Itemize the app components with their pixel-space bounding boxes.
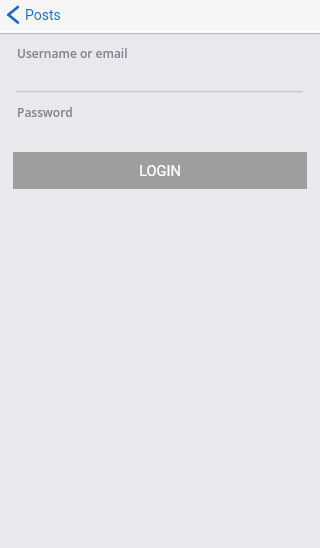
button[interactable]: Password xyxy=(12,99,308,145)
staticText: Password xyxy=(17,104,73,120)
staticText: Username or email xyxy=(17,45,128,61)
staticText: Posts xyxy=(25,7,61,23)
button[interactable]: LOGIN xyxy=(13,152,307,189)
button[interactable]: Back to Posts xyxy=(1,0,71,30)
staticText: LOGIN xyxy=(139,163,181,180)
button[interactable]: Username or email xyxy=(12,40,308,92)
